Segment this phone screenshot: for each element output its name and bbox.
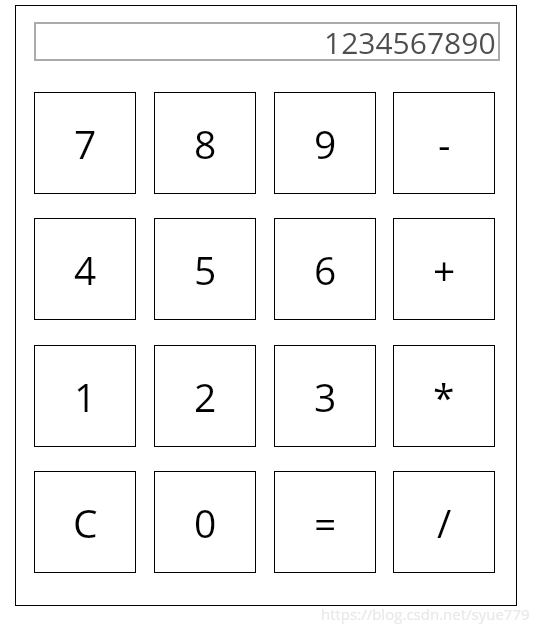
button[interactable]: = (274, 471, 376, 573)
staticText: 5 (194, 243, 217, 296)
staticText: * (433, 370, 455, 423)
button[interactable]: 8 (154, 92, 256, 194)
button[interactable]: 5 (154, 218, 256, 320)
button[interactable]: + (393, 218, 495, 320)
button[interactable]: - (393, 92, 495, 194)
staticText: 1234567890 (324, 22, 496, 61)
button[interactable]: / (393, 471, 495, 573)
staticText: 1 (74, 370, 97, 423)
staticText: 9 (314, 117, 337, 170)
button[interactable]: 4 (34, 218, 136, 320)
staticText: 0 (194, 496, 217, 549)
staticText: https://blog.csdn.net/syue779 (321, 604, 530, 624)
staticText: - (438, 117, 451, 170)
staticText: 3 (314, 370, 337, 423)
button[interactable]: 9 (274, 92, 376, 194)
staticText: 2 (194, 370, 217, 423)
button[interactable]: 2 (154, 345, 256, 447)
staticText: = (314, 496, 337, 549)
staticText: C (73, 496, 98, 549)
button[interactable]: 0 (154, 471, 256, 573)
staticText: 7 (74, 117, 97, 170)
button[interactable]: C (34, 471, 136, 573)
staticText: + (433, 243, 456, 296)
staticText: 6 (314, 243, 337, 296)
button[interactable]: 7 (34, 92, 136, 194)
staticText: 4 (74, 243, 97, 296)
staticText: / (437, 496, 452, 549)
button[interactable]: 1 (34, 345, 136, 447)
button[interactable]: * (393, 345, 495, 447)
button[interactable]: 3 (274, 345, 376, 447)
staticText: 8 (194, 117, 217, 170)
button[interactable]: 6 (274, 218, 376, 320)
